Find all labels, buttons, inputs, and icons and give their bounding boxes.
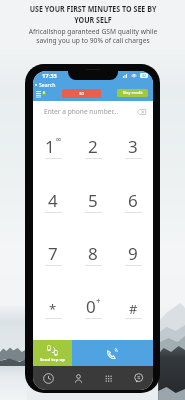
button[interactable]: 0 — [73, 281, 113, 334]
staticText: # — [129, 300, 138, 318]
staticText: 17:35 — [42, 72, 57, 80]
staticText: Send top up — [40, 357, 65, 363]
staticText: Africallshop garanteed GSM quality while… — [22, 26, 164, 46]
staticText: * — [49, 300, 57, 318]
staticText: + — [96, 295, 101, 306]
staticText: USE YOUR FIRST MINUTES TO SEE BY YOUR SE… — [28, 3, 158, 25]
staticText: € — [43, 91, 45, 95]
button[interactable]: Menu — [34, 89, 43, 99]
staticText: 4 — [48, 189, 58, 212]
staticText: 2 — [88, 135, 98, 158]
staticText: Buy credit — [123, 90, 143, 96]
staticText: Search — [39, 81, 56, 88]
staticText: 7 — [48, 242, 58, 265]
button[interactable]: 2 — [73, 121, 113, 175]
staticText: 5 — [88, 189, 98, 212]
button[interactable]: # — [113, 281, 153, 334]
button[interactable]: 1 — [33, 121, 73, 175]
staticText: 9 — [128, 242, 138, 265]
button[interactable]: Keypad — [93, 366, 123, 390]
staticText: 3 — [128, 135, 138, 158]
button[interactable]: $0 — [62, 89, 101, 98]
staticText: ∞ — [55, 135, 62, 144]
staticText: 6 — [128, 189, 138, 212]
staticText: 0 — [86, 295, 96, 318]
button[interactable]: Balance — [42, 91, 46, 95]
staticText: Enter a phone number... — [44, 107, 119, 116]
button[interactable]: 7 — [33, 228, 73, 281]
button[interactable]: Recent calls — [33, 366, 63, 390]
button[interactable]: 9 — [113, 228, 153, 281]
button[interactable]: Buy credit — [117, 89, 148, 97]
button[interactable]: Backspace — [136, 106, 147, 117]
button[interactable]: 6 — [113, 175, 153, 228]
staticText: 8 — [88, 242, 98, 265]
button[interactable]: Call — [72, 340, 153, 366]
button[interactable]: 8 — [73, 228, 113, 281]
staticText: $0 — [79, 91, 84, 97]
button[interactable]: 5 — [73, 175, 113, 228]
button[interactable]: Send top up — [33, 340, 72, 366]
staticText: 32 — [142, 73, 146, 78]
button[interactable]: Contacts — [63, 366, 93, 390]
button[interactable]: 3 — [113, 121, 153, 175]
button[interactable]: Messages — [123, 366, 153, 390]
button[interactable]: 4 — [33, 175, 73, 228]
button[interactable]: * — [33, 281, 73, 334]
staticText: 1 — [45, 135, 55, 158]
